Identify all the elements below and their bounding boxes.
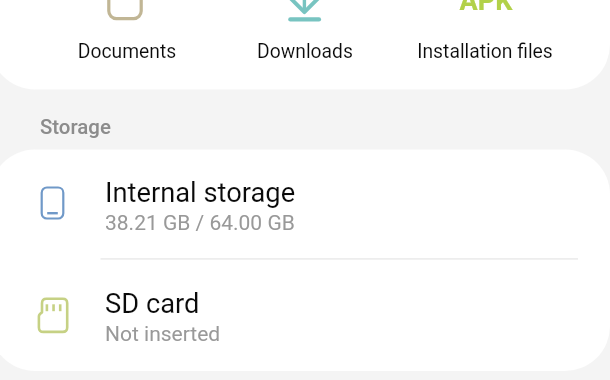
button[interactable]: Downloads	[230, 0, 380, 65]
staticText: Installation files	[410, 40, 560, 63]
staticText: 38.21 GB / 64.00 GB	[105, 211, 295, 236]
button[interactable]: Documents	[51, 0, 201, 65]
staticText: APK	[411, 0, 561, 17]
button[interactable]: APK	[409, 0, 559, 65]
staticText: SD card	[105, 288, 200, 320]
staticText: Not inserted	[105, 322, 221, 347]
staticText: Internal storage	[105, 177, 296, 209]
staticText: Downloads	[230, 40, 380, 63]
button[interactable]: Internal storage	[0, 150, 610, 259]
staticText: Documents	[52, 40, 202, 63]
staticText: Storage	[40, 115, 111, 139]
button[interactable]: SD card	[0, 259, 610, 371]
